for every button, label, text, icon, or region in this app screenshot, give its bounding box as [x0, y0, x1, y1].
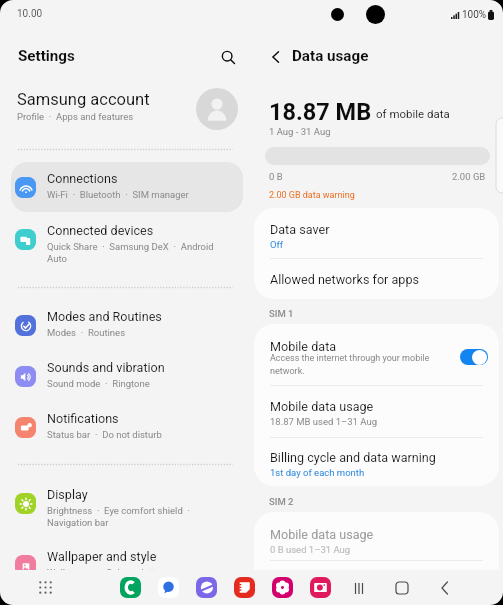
button[interactable]: Back — [262, 43, 290, 71]
staticText: Mobile data usage — [270, 527, 374, 542]
staticText: 10.00 — [17, 8, 43, 20]
staticText: Off — [270, 239, 284, 250]
staticText: Data usage — [292, 47, 369, 65]
button[interactable] — [120, 577, 141, 598]
button[interactable] — [158, 577, 179, 598]
staticText: 2.00 GB data warning — [269, 190, 355, 201]
staticText: 2.00 GB — [452, 171, 486, 182]
staticText: Quick Share · Samsung DeX · Android Auto — [47, 241, 214, 264]
button[interactable]: Home — [392, 578, 412, 598]
staticText: Brightness · Eye comfort shield · Naviga… — [47, 505, 190, 528]
staticText: Sounds and vibration — [47, 360, 165, 375]
staticText: Notifications — [47, 411, 119, 426]
staticText: Sound mode · Ringtone — [47, 378, 150, 389]
button[interactable] — [234, 577, 255, 598]
staticText: Status bar · Do not disturb — [47, 429, 162, 440]
button[interactable]: Wallpaper and style — [11, 540, 243, 590]
staticText: Modes · Routines — [47, 327, 126, 338]
staticText: Data saver — [270, 222, 330, 237]
button[interactable]: Recents — [349, 578, 369, 598]
staticText: Allowed networks for apps — [270, 272, 420, 287]
staticText: Wallpapers · Color palette — [47, 567, 160, 578]
staticText: 100% — [462, 9, 487, 21]
staticText: 1st day of each month — [270, 467, 365, 478]
button[interactable]: Back — [435, 578, 455, 598]
staticText: Connections — [47, 171, 118, 186]
button[interactable]: Modes and Routines — [11, 300, 243, 350]
staticText: 18.87 MB used 1–31 Aug — [270, 416, 378, 427]
staticText: SIM 1 — [269, 308, 294, 319]
staticText: Settings — [18, 47, 75, 65]
staticText: of mobile data — [376, 107, 450, 120]
staticText: Billing cycle and data warning — [270, 450, 436, 465]
staticText: 0 B — [269, 171, 283, 182]
staticText: Mobile data usage — [270, 399, 374, 414]
staticText: 18.87 MB — [269, 98, 372, 126]
button[interactable]: Connected devices — [11, 214, 243, 264]
staticText: Wallpaper and style — [47, 549, 157, 564]
staticText: SIM 2 — [269, 496, 294, 507]
button[interactable]: Connections — [11, 162, 243, 212]
button[interactable]: Sounds and vibration — [11, 351, 243, 401]
button[interactable]: Search — [215, 44, 241, 70]
button[interactable] — [272, 577, 293, 598]
button[interactable]: Display — [11, 478, 243, 528]
staticText: Access the internet through your mobile … — [270, 353, 430, 376]
button[interactable] — [310, 577, 331, 598]
staticText: Samsung account — [17, 90, 150, 109]
staticText: Modes and Routines — [47, 309, 162, 324]
button[interactable]: Samsung account — [0, 82, 250, 142]
staticText: Display — [47, 487, 88, 502]
staticText: Mobile data — [270, 339, 337, 354]
button[interactable] — [196, 577, 217, 598]
staticText: 1 Aug - 31 Aug — [269, 126, 331, 137]
button[interactable] — [460, 349, 488, 365]
staticText: 0 B used 1–31 Aug — [270, 544, 351, 555]
button[interactable]: Notifications — [11, 402, 243, 452]
staticText: Wi-Fi · Bluetooth · SIM manager — [47, 189, 189, 200]
button[interactable]: Apps — [39, 581, 52, 594]
staticText: Connected devices — [47, 223, 154, 238]
staticText: Profile · Apps and features — [17, 111, 134, 122]
